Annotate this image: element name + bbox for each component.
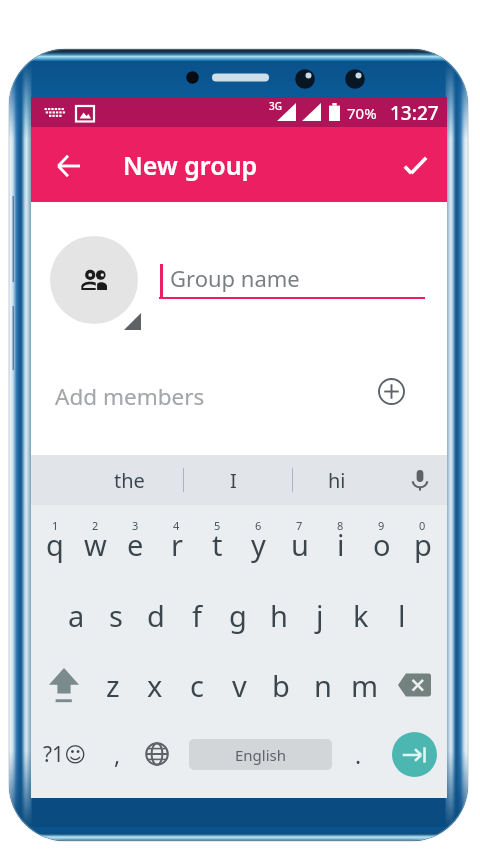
staticText: 13:27 [390,100,439,126]
staticText: . [355,739,362,770]
staticText: f [192,596,202,635]
staticText: New group [123,148,258,182]
button[interactable]: the [77,455,181,505]
button[interactable]: 7 [279,505,320,578]
staticText: 70% [347,103,377,123]
staticText: I [230,467,237,494]
staticText: the [114,467,145,494]
button[interactable]: 8 [320,505,361,578]
button[interactable]: c [176,650,218,720]
button[interactable]: n [302,650,344,720]
staticText: h [270,596,288,635]
button[interactable]: I [181,455,285,505]
staticText: hi [328,467,346,494]
button[interactable]: Group photo [50,236,138,324]
staticText: English [235,745,287,765]
staticText: q [46,525,64,564]
staticText: a [68,596,85,635]
staticText: g [229,596,247,635]
button[interactable]: m [344,650,386,720]
button[interactable]: Back [44,142,92,190]
button[interactable]: k [340,580,381,650]
button[interactable]: Add members [31,370,447,422]
staticText: v [232,666,247,705]
staticText: x [147,666,163,705]
staticText: e [127,525,144,564]
button[interactable]: 6 [238,505,279,578]
staticText: r [171,525,183,564]
staticText: u [291,525,309,564]
staticText: p [414,525,432,564]
button[interactable]: l [381,580,422,650]
staticText: 9 [378,518,385,533]
button[interactable]: ?1☺ [33,718,97,790]
button[interactable]: 1 [35,505,75,578]
staticText: c [190,666,204,705]
button[interactable]: Backspace [386,650,443,720]
button[interactable]: j [299,580,340,650]
staticText: 3 [132,518,139,533]
button[interactable]: 3 [115,505,156,578]
button[interactable]: 9 [361,505,402,578]
staticText: 4 [173,518,180,533]
staticText: , [114,739,121,770]
staticText: 8 [337,518,344,533]
staticText: d [147,596,165,635]
button[interactable]: v [218,650,260,720]
staticText: i [337,525,345,564]
staticText: m [351,666,379,705]
button[interactable]: . [337,718,379,790]
staticText: s [109,596,123,635]
staticText: Group name [170,263,300,293]
button[interactable]: Create group [391,141,439,189]
staticText: l [398,596,406,635]
button[interactable]: English [189,739,332,770]
button[interactable]: b [260,650,302,720]
staticText: 1 [52,518,59,533]
staticText: k [353,596,369,635]
button[interactable]: , [97,718,137,790]
button[interactable]: 4 [156,505,197,578]
button[interactable]: x [134,650,176,720]
staticText: Add members [55,381,205,412]
button[interactable]: g [217,580,258,650]
staticText: 0 [419,518,426,533]
button[interactable]: 2 [75,505,115,578]
button[interactable]: 5 [197,505,238,578]
button[interactable]: d [136,580,176,650]
staticText: t [212,525,223,564]
button[interactable]: Shift [35,650,92,720]
staticText: j [316,596,324,635]
staticText: 3G [269,99,282,113]
button[interactable]: h [258,580,299,650]
button[interactable]: Enter [387,718,441,790]
staticText: 7 [296,518,303,533]
staticText: ?1☺ [43,740,87,769]
staticText: n [314,666,332,705]
button[interactable]: f [176,580,217,650]
staticText: y [251,525,266,564]
staticText: 6 [255,518,262,533]
staticText: w [84,525,107,564]
button[interactable]: hi [285,455,389,505]
staticText: b [272,666,290,705]
button[interactable]: 0 [402,505,443,578]
staticText: z [106,666,120,705]
staticText: o [373,525,391,564]
button[interactable]: Change language [136,718,178,790]
staticText: 2 [92,518,99,533]
button[interactable]: z [92,650,134,720]
button[interactable]: a [56,580,96,650]
button[interactable]: s [96,580,136,650]
staticText: 5 [214,518,221,533]
button[interactable]: Voice input [393,455,447,505]
